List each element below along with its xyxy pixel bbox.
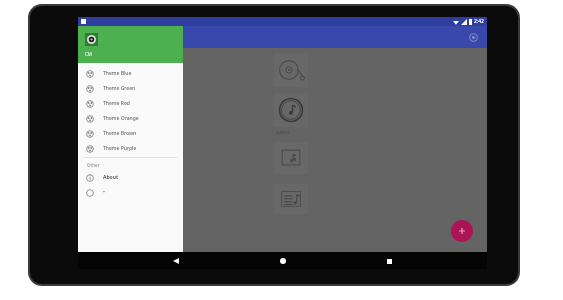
staticText: • — [103, 189, 105, 196]
staticText: Theme Blue — [103, 70, 132, 77]
staticText: Theme Purple — [103, 145, 137, 152]
staticText: 2:42 — [474, 18, 484, 25]
button[interactable]: Theme Red — [78, 96, 183, 111]
button[interactable]: Theme Purple — [78, 141, 183, 156]
button[interactable]: CM — [78, 26, 183, 63]
button[interactable]: Add — [451, 220, 473, 242]
button[interactable]: Theme Blue — [78, 66, 183, 81]
button[interactable]: Back — [168, 253, 184, 269]
staticText: Other — [87, 162, 100, 168]
button[interactable] — [78, 139, 487, 177]
staticText: About — [103, 174, 119, 181]
button[interactable]: Home — [275, 253, 291, 269]
button[interactable]: Theme Brown — [78, 126, 183, 141]
staticText: SONGS — [276, 130, 290, 135]
staticText: Theme Orange — [103, 115, 139, 122]
button[interactable]: About — [78, 170, 183, 185]
button[interactable]: More options — [467, 31, 479, 43]
staticText: CM — [85, 51, 92, 57]
button[interactable] — [78, 50, 487, 90]
button[interactable]: Theme Green — [78, 81, 183, 96]
button[interactable] — [78, 181, 487, 217]
staticText: Theme Red — [103, 100, 130, 107]
button[interactable] — [78, 90, 487, 130]
button[interactable]: Theme Orange — [78, 111, 183, 126]
button[interactable]: Recents — [381, 253, 397, 269]
button[interactable]: • — [78, 185, 183, 200]
staticText: Theme Green — [103, 85, 136, 92]
staticText: Theme Brown — [103, 130, 137, 137]
